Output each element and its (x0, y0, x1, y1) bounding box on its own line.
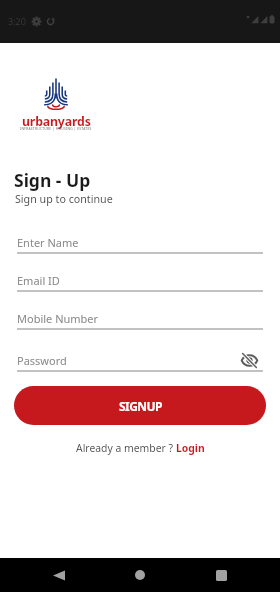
staticText: INFRASTRUCTURE | HOUSING | ESTATES (20, 126, 92, 130)
staticText: Sign up to continue (15, 192, 113, 207)
staticText: Mobile Number (17, 311, 99, 326)
staticText: Enter Name (17, 235, 79, 250)
staticText: 3:20 (8, 15, 26, 27)
staticText: SIGNUP (119, 398, 162, 414)
button[interactable]: Login (176, 441, 205, 455)
button[interactable]: Back (38, 558, 80, 592)
button[interactable]: Recent apps (200, 558, 242, 592)
staticText: urbanyards (22, 113, 91, 130)
staticText: Password (17, 353, 67, 368)
button[interactable]: Toggle password visibility (239, 350, 259, 370)
button[interactable]: SIGNUP (14, 386, 266, 425)
staticText: Already a member ? (76, 441, 176, 455)
staticText: Email ID (17, 273, 60, 288)
staticText: Sign - Up (14, 168, 91, 192)
button[interactable]: Home (119, 558, 161, 592)
